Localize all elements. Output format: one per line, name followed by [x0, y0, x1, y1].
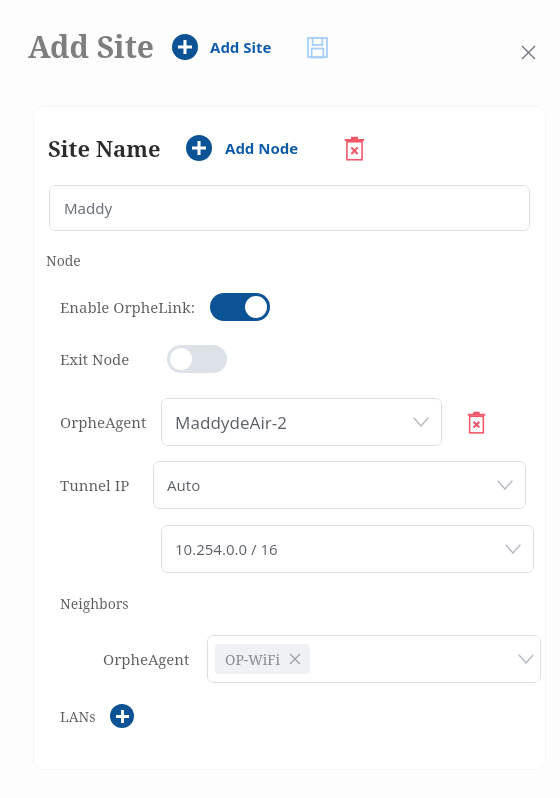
staticText: Auto: [167, 475, 498, 495]
staticText: LANs: [60, 707, 96, 726]
staticText: OrpheAgent: [60, 412, 147, 432]
staticText: 10.254.0.0 / 16: [175, 539, 506, 559]
staticText: Exit Node: [60, 349, 130, 369]
staticText: Site Name: [48, 133, 161, 163]
button[interactable]: Switch on: [210, 293, 270, 321]
staticText: Add Site: [28, 26, 154, 67]
staticText: Tunnel IP: [60, 475, 130, 495]
staticText: Add Site: [210, 37, 272, 57]
button[interactable]: Switch off: [167, 345, 227, 373]
button[interactable]: Save: [302, 32, 332, 62]
button[interactable]: Auto: [153, 461, 526, 509]
button[interactable]: Add Node: [186, 135, 299, 161]
staticText: OrpheAgent: [103, 649, 190, 669]
button[interactable]: Delete site: [339, 133, 369, 163]
staticText: MaddydeAir-2: [175, 411, 414, 434]
button[interactable]: MaddydeAir-2: [161, 398, 442, 446]
button[interactable]: Close: [514, 38, 542, 66]
button[interactable]: 10.254.0.0 / 16: [161, 525, 534, 573]
staticText: Node: [46, 251, 81, 270]
staticText: Neighbors: [60, 594, 129, 613]
button[interactable]: Add LAN: [110, 704, 134, 728]
button[interactable]: Add Site: [172, 34, 272, 60]
button[interactable]: Delete node: [462, 408, 490, 436]
staticText: Enable OrpheLink:: [60, 297, 196, 317]
button[interactable]: Maddy: [49, 185, 530, 231]
staticText: OP-WiFi: [225, 650, 281, 669]
staticText: Add Node: [225, 138, 299, 158]
button[interactable]: OP-WiFi: [207, 635, 541, 683]
staticText: Maddy: [64, 198, 113, 218]
